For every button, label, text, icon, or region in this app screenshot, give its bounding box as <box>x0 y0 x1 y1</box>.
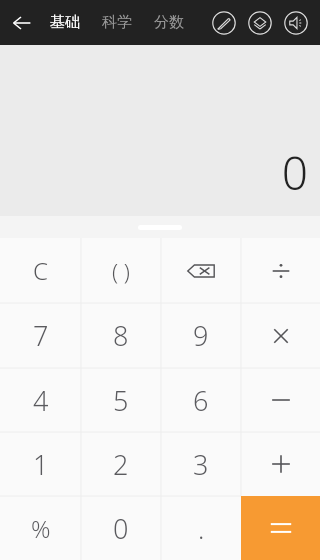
staticText: 分数 <box>154 13 184 32</box>
button[interactable] <box>241 368 320 432</box>
staticText: 9 <box>193 317 209 354</box>
button[interactable]: History <box>242 5 278 41</box>
button[interactable]: C <box>0 238 81 303</box>
button[interactable]: 分数 <box>148 5 190 40</box>
button[interactable]: % <box>0 496 81 560</box>
staticText: 基础 <box>50 13 80 32</box>
staticText: . <box>198 511 205 546</box>
button[interactable]: Edit <box>206 5 242 41</box>
staticText: 6 <box>193 382 209 419</box>
button[interactable]: 9 <box>161 303 241 368</box>
staticText: 5 <box>113 382 129 419</box>
button[interactable] <box>241 303 320 368</box>
button[interactable]: ( ) <box>81 238 161 303</box>
button[interactable]: Sound <box>278 5 314 41</box>
button[interactable]: 0 <box>81 496 161 560</box>
button[interactable]: 5 <box>81 368 161 432</box>
button[interactable]: . <box>161 496 241 560</box>
staticText: 2 <box>113 446 129 483</box>
button[interactable]: Backspace <box>161 238 241 303</box>
button[interactable]: 基础 <box>44 5 86 40</box>
staticText: 4 <box>33 382 49 419</box>
staticText: 0 <box>281 141 308 204</box>
staticText: 科学 <box>102 13 132 32</box>
button[interactable]: 2 <box>81 432 161 496</box>
button[interactable] <box>241 496 320 560</box>
button[interactable] <box>241 432 320 496</box>
staticText: 3 <box>193 446 209 483</box>
staticText: % <box>31 512 51 545</box>
staticText: 1 <box>33 446 49 483</box>
staticText: ( ) <box>112 256 130 286</box>
button[interactable]: 科学 <box>96 5 138 40</box>
button[interactable]: Back <box>0 1 44 45</box>
staticText: 0 <box>113 510 129 547</box>
button[interactable]: 1 <box>0 432 81 496</box>
button[interactable] <box>241 238 320 303</box>
button[interactable]: 8 <box>81 303 161 368</box>
staticText: 8 <box>113 317 129 354</box>
button[interactable]: 7 <box>0 303 81 368</box>
button[interactable]: 6 <box>161 368 241 432</box>
staticText: C <box>33 254 48 287</box>
button[interactable]: 3 <box>161 432 241 496</box>
button[interactable]: 4 <box>0 368 81 432</box>
staticText: 7 <box>33 317 49 354</box>
